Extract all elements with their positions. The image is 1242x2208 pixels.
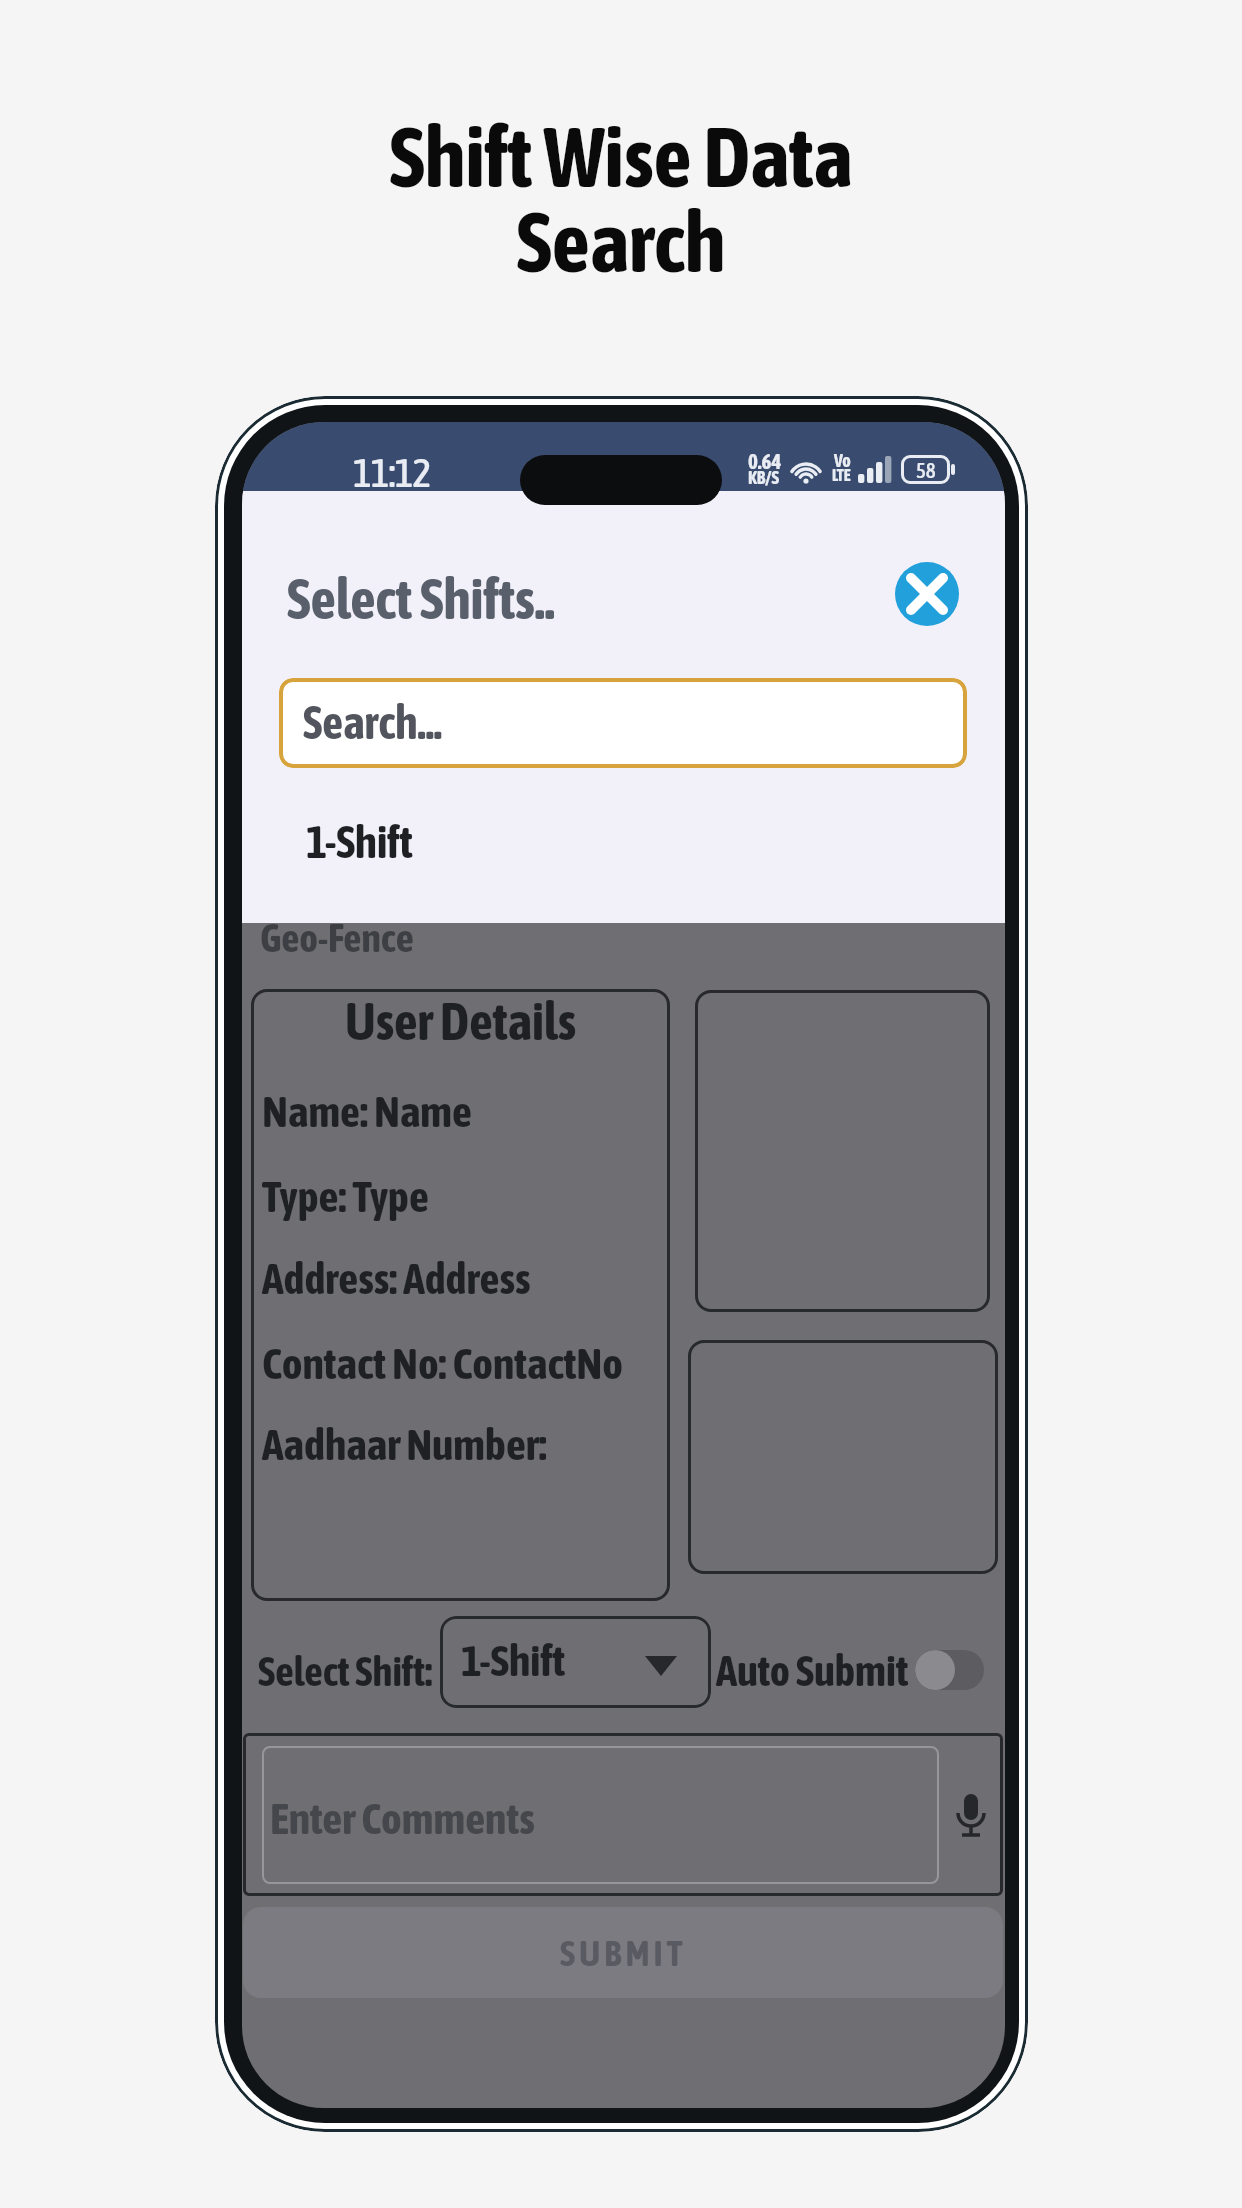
staticText: Enter Comments xyxy=(270,1793,535,1843)
staticText: LTE xyxy=(832,466,851,484)
staticText: Select Shift: xyxy=(258,1648,433,1695)
button[interactable]: 1-Shift xyxy=(440,1616,711,1708)
staticText: Auto Submit xyxy=(716,1646,909,1695)
staticText: 11:12 xyxy=(353,450,431,496)
staticText: 0.64 xyxy=(748,449,782,473)
button[interactable]: 1-Shift xyxy=(242,802,1005,884)
staticText: 58 xyxy=(916,458,936,482)
staticText: Name: Name xyxy=(262,1086,473,1136)
staticText: Address: Address xyxy=(262,1253,531,1303)
staticText: Shift Wise Data Search xyxy=(0,109,1242,290)
button[interactable]: SUBMIT xyxy=(243,1907,1003,1998)
staticText: Type: Type xyxy=(262,1171,429,1221)
staticText: Search... xyxy=(303,696,443,749)
staticText: Vo xyxy=(834,450,851,471)
staticText: KB/S xyxy=(748,467,779,488)
staticText: Geo-Fence xyxy=(260,915,414,961)
staticText: Select Shifts.. xyxy=(287,567,555,631)
staticText: SUBMIT xyxy=(560,1932,687,1973)
staticText: Aadhaar Number: xyxy=(262,1419,547,1469)
staticText: User Details xyxy=(251,991,670,1051)
button[interactable] xyxy=(915,1650,984,1690)
button[interactable] xyxy=(279,678,967,768)
staticText: 1-Shift xyxy=(461,1635,566,1685)
button[interactable] xyxy=(895,562,959,626)
button[interactable] xyxy=(262,1746,939,1884)
staticText: 1-Shift xyxy=(306,816,413,868)
staticText: Contact No: ContactNo xyxy=(262,1338,623,1388)
